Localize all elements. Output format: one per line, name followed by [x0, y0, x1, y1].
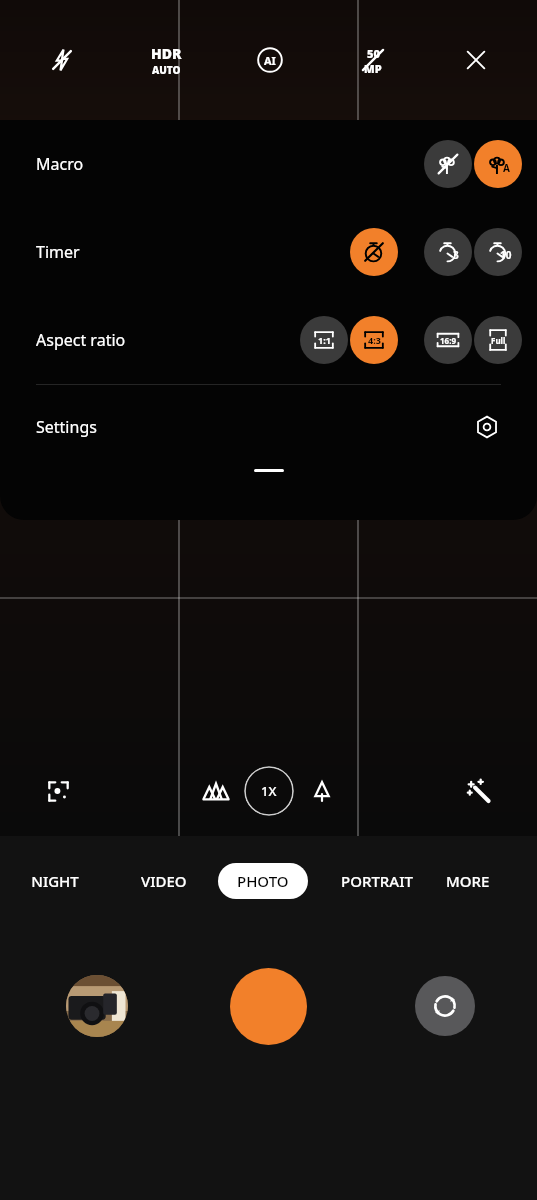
- button[interactable]: MORE: [446, 859, 536, 903]
- button[interactable]: Macro off: [424, 140, 472, 188]
- button[interactable]: Close: [454, 38, 498, 82]
- button[interactable]: Timer off: [350, 228, 398, 276]
- button[interactable]: HDR auto: [140, 34, 192, 86]
- staticText: PORTRAIT: [341, 871, 413, 891]
- staticText: 10: [500, 248, 512, 262]
- staticText: Full: [491, 335, 506, 346]
- staticText: AUTO: [152, 63, 181, 77]
- button[interactable]: PORTRAIT: [308, 859, 446, 903]
- staticText: PHOTO: [237, 871, 289, 891]
- staticText: Macro: [36, 153, 84, 175]
- staticText: 1X: [261, 782, 277, 800]
- button[interactable]: 1:1: [300, 316, 348, 364]
- staticText: 50: [367, 46, 380, 61]
- button[interactable]: Telephoto: [300, 769, 344, 813]
- button[interactable]: 50 MP off: [351, 38, 395, 82]
- button[interactable]: NIGHT: [0, 859, 110, 903]
- button[interactable]: 4:3: [350, 316, 398, 364]
- staticText: 4:3: [368, 334, 381, 346]
- staticText: A: [503, 161, 510, 175]
- button[interactable]: 16:9: [424, 316, 472, 364]
- staticText: MP: [364, 61, 382, 74]
- staticText: 16:9: [440, 335, 456, 346]
- button[interactable]: Shutter: [230, 968, 307, 1045]
- staticText: 1:1: [318, 334, 331, 346]
- button[interactable]: Filters: [457, 769, 501, 813]
- button[interactable]: Ultra wide: [194, 769, 238, 813]
- button[interactable]: Timer 10 seconds: [474, 228, 522, 276]
- staticText: AI: [264, 53, 276, 68]
- staticText: 3: [453, 248, 459, 262]
- staticText: Timer: [36, 241, 80, 263]
- staticText: MORE: [446, 871, 490, 891]
- button[interactable]: 1X: [244, 766, 294, 816]
- staticText: HDR: [151, 44, 182, 63]
- button[interactable]: Gallery: [66, 975, 128, 1037]
- button[interactable]: Settings: [470, 410, 504, 444]
- button[interactable]: PHOTO: [237, 863, 289, 899]
- button[interactable]: Focus mode: [36, 769, 80, 813]
- staticText: VIDEO: [141, 871, 187, 891]
- staticText: Aspect ratio: [36, 329, 126, 351]
- button[interactable]: Flash off: [40, 38, 84, 82]
- staticText: NIGHT: [31, 871, 79, 891]
- button[interactable]: AI scene detection: [248, 38, 292, 82]
- button[interactable]: Timer 3 seconds: [424, 228, 472, 276]
- button[interactable]: VIDEO: [110, 859, 218, 903]
- button[interactable]: Macro auto: [474, 140, 522, 188]
- staticText: Settings: [36, 416, 97, 438]
- button[interactable]: Switch camera: [415, 976, 475, 1036]
- button[interactable]: Full: [474, 316, 522, 364]
